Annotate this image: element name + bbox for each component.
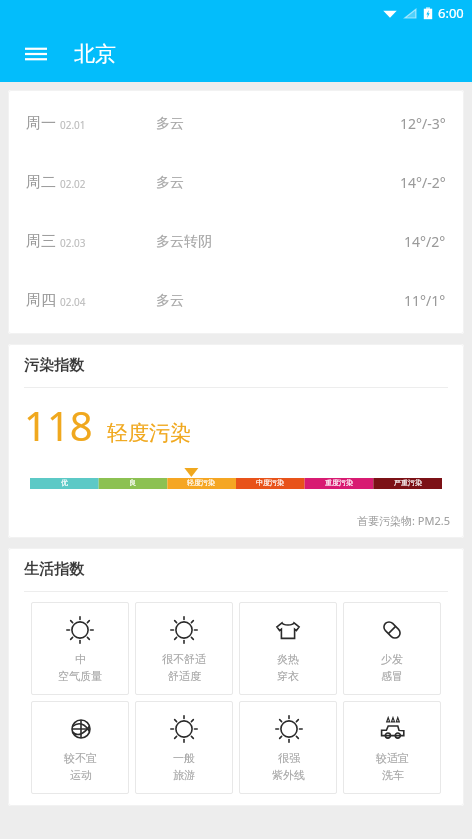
staticText: 优 — [61, 478, 68, 487]
button[interactable]: 周二 — [8, 153, 464, 212]
staticText: 舒适度 — [168, 669, 201, 683]
button[interactable]: 周三 — [8, 212, 464, 271]
button[interactable]: 周一 — [8, 94, 464, 153]
staticText: 轻度污染 — [187, 478, 215, 487]
button[interactable]: 较不宜 — [31, 701, 129, 794]
button[interactable]: 很不舒适 — [135, 602, 233, 695]
staticText: 中度污染 — [256, 478, 284, 487]
staticText: 感冒 — [381, 669, 403, 683]
staticText: 12°/-3° — [400, 114, 446, 133]
staticText: 紫外线 — [272, 768, 305, 782]
staticText: 穿衣 — [277, 669, 299, 683]
staticText: 良 — [129, 478, 136, 487]
staticText: 空气质量 — [58, 669, 102, 683]
staticText: 一般 — [173, 751, 195, 765]
staticText: 周二 — [26, 173, 56, 192]
button[interactable]: 较适宜 — [343, 701, 441, 794]
staticText: 很不舒适 — [162, 652, 206, 666]
button[interactable]: 周四 — [8, 271, 464, 330]
staticText: 重度污染 — [325, 478, 353, 487]
staticText: 中 — [75, 652, 86, 666]
staticText: 多云 — [156, 174, 184, 192]
staticText: 11°/1° — [404, 291, 446, 310]
staticText: 02.03 — [60, 236, 86, 250]
staticText: 北京 — [74, 41, 116, 67]
staticText: 炎热 — [277, 652, 299, 666]
staticText: 6:00 — [438, 4, 464, 22]
button[interactable]: 一般 — [135, 701, 233, 794]
button[interactable]: 很强 — [239, 701, 337, 794]
staticText: 运动 — [70, 768, 92, 782]
staticText: 洗车 — [382, 768, 404, 782]
staticText: 较适宜 — [376, 751, 409, 765]
staticText: 少发 — [381, 652, 403, 666]
staticText: 较不宜 — [64, 751, 97, 765]
staticText: 多云 — [156, 115, 184, 133]
staticText: 多云转阴 — [156, 233, 212, 251]
staticText: 14°/2° — [404, 232, 446, 251]
staticText: 周四 — [26, 291, 56, 310]
staticText: 周一 — [26, 114, 56, 133]
button[interactable]: Open navigation menu — [14, 32, 58, 76]
staticText: 生活指数 — [24, 560, 84, 579]
button[interactable]: 炎热 — [239, 602, 337, 695]
staticText: 14°/-2° — [400, 173, 446, 192]
staticText: 118 — [24, 398, 93, 452]
staticText: 旅游 — [173, 768, 195, 782]
staticText: 02.01 — [60, 118, 86, 132]
staticText: 02.02 — [60, 177, 86, 191]
staticText: 周三 — [26, 232, 56, 251]
staticText: 很强 — [278, 751, 300, 765]
staticText: 首要污染物: PM2.5 — [357, 513, 450, 528]
staticText: 轻度污染 — [107, 420, 191, 446]
staticText: 02.04 — [60, 295, 86, 309]
staticText: 多云 — [156, 292, 184, 310]
button[interactable]: 中 — [31, 602, 129, 695]
staticText: 严重污染 — [394, 478, 422, 487]
button[interactable]: 少发 — [343, 602, 441, 695]
staticText: 污染指数 — [24, 356, 84, 375]
